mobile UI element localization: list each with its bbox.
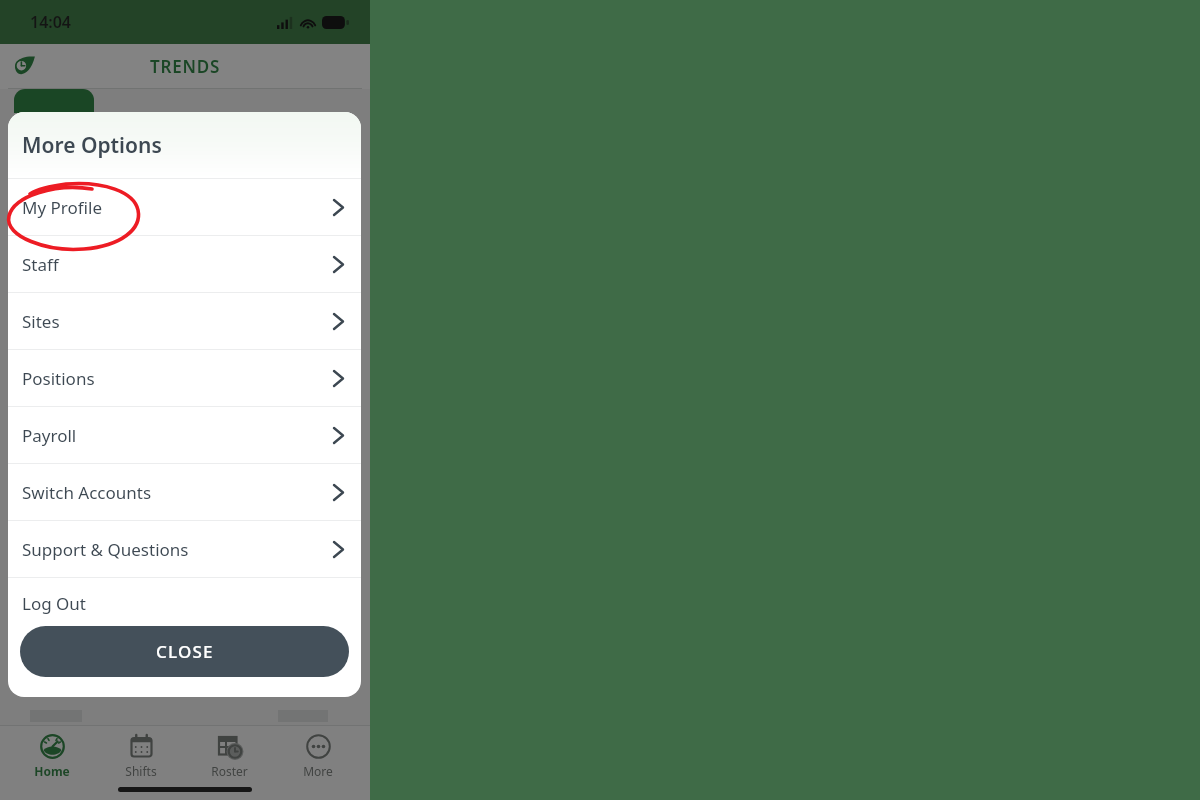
button[interactable]: Positions bbox=[8, 350, 361, 407]
staticText: Payroll bbox=[22, 424, 77, 447]
staticText: 14:04 bbox=[30, 11, 72, 33]
button[interactable]: Shifts bbox=[105, 734, 177, 779]
button[interactable]: Switch Accounts bbox=[8, 464, 361, 521]
staticText: Shifts bbox=[125, 763, 157, 779]
button[interactable]: Home bbox=[16, 734, 88, 779]
button[interactable]: CLOSE bbox=[20, 626, 349, 677]
staticText: Sites bbox=[22, 310, 60, 333]
staticText: More bbox=[303, 763, 333, 779]
button[interactable]: Staff bbox=[8, 236, 361, 293]
staticText: My Profile bbox=[22, 196, 102, 219]
button[interactable]: My Profile bbox=[8, 179, 361, 236]
staticText: TRENDS bbox=[150, 55, 221, 78]
staticText: Staff bbox=[22, 253, 59, 276]
staticText: Log Out bbox=[22, 592, 86, 615]
button[interactable]: More bbox=[282, 734, 354, 779]
staticText: Positions bbox=[22, 367, 95, 390]
staticText: More Options bbox=[22, 131, 162, 160]
button[interactable]: Sites bbox=[8, 293, 361, 350]
staticText: Home bbox=[34, 763, 70, 779]
staticText: Support & Questions bbox=[22, 538, 189, 561]
staticText: Roster bbox=[211, 763, 248, 779]
button[interactable]: Roster bbox=[193, 734, 265, 779]
button[interactable]: Support & Questions bbox=[8, 521, 361, 578]
button[interactable]: Payroll bbox=[8, 407, 361, 464]
button[interactable]: Log Out bbox=[8, 578, 361, 602]
staticText: CLOSE bbox=[156, 640, 214, 663]
staticText: Switch Accounts bbox=[22, 481, 152, 504]
